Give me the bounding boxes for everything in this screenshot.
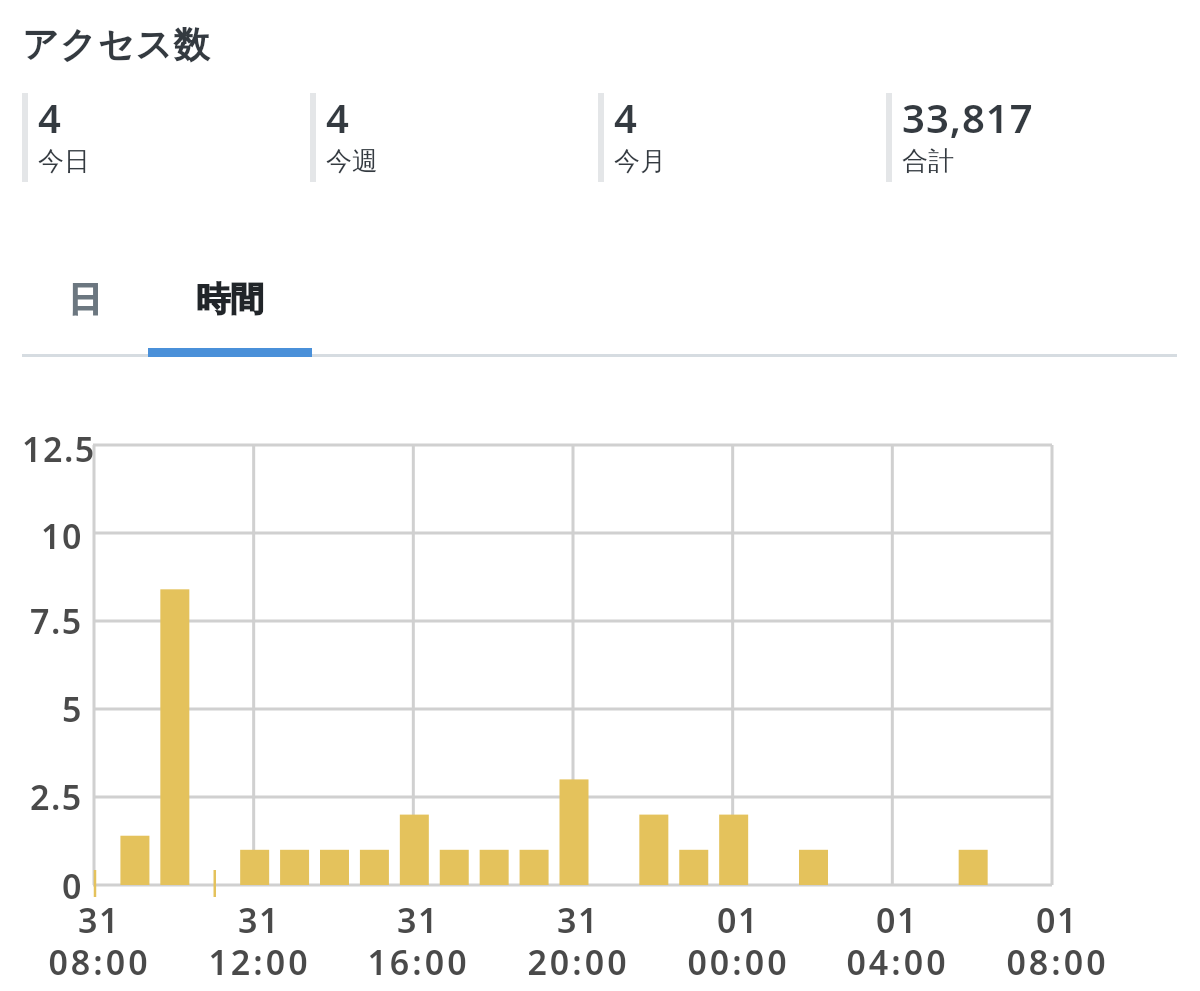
staticText: 7.5 (30, 598, 83, 644)
staticText: 31 (397, 897, 439, 935)
button[interactable]: 4 (22, 93, 310, 182)
button[interactable]: 4 (310, 93, 598, 182)
staticText: 16:00 (367, 939, 470, 977)
button[interactable]: 時間ごとのアクセス数グラフ (88, 439, 1060, 905)
staticText: 4 (326, 90, 350, 144)
button[interactable]: 時間 (148, 259, 312, 357)
staticText: 時間 (196, 278, 264, 321)
staticText: 12:00 (208, 939, 311, 977)
staticText: 今月 (614, 145, 666, 178)
staticText: 33,817 (902, 90, 1034, 144)
staticText: 4 (614, 90, 638, 144)
button[interactable]: 33,817 (886, 93, 1096, 182)
staticText: 今日 (38, 145, 90, 178)
staticText: 31 (557, 897, 599, 935)
staticText: 31 (78, 897, 120, 935)
staticText: 08:00 (48, 939, 151, 977)
staticText: 4 (38, 90, 62, 144)
staticText: 04:00 (846, 939, 949, 977)
button[interactable]: 日 (22, 259, 148, 357)
staticText: 01 (717, 897, 759, 935)
staticText: 12.5 (22, 426, 96, 472)
staticText: 20:00 (527, 939, 630, 977)
staticText: 01 (1036, 897, 1078, 935)
staticText: 合計 (902, 145, 954, 178)
staticText: 日 (68, 278, 102, 321)
staticText: 00:00 (687, 939, 790, 977)
staticText: アクセス数 (22, 22, 211, 67)
staticText: 08:00 (1006, 939, 1109, 977)
staticText: 31 (238, 897, 280, 935)
staticText: 今週 (326, 145, 378, 178)
staticText: 01 (876, 897, 918, 935)
staticText: 5 (62, 686, 83, 732)
button[interactable]: 4 (598, 93, 886, 182)
staticText: 0 (62, 863, 83, 909)
staticText: 10 (41, 513, 83, 559)
staticText: 2.5 (30, 774, 83, 820)
